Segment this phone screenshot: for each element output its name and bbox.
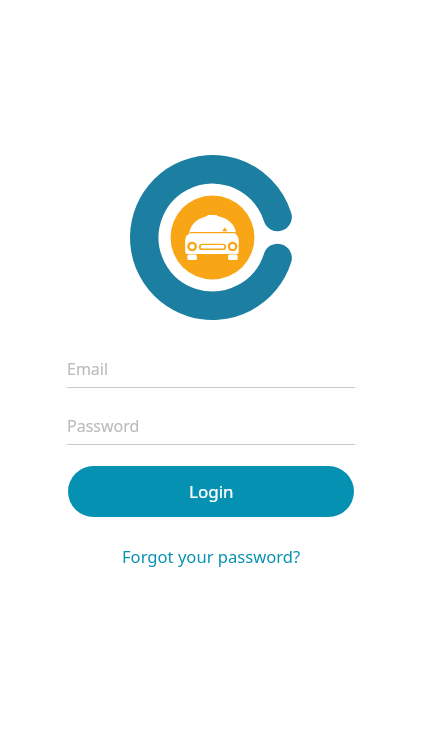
- other: Taxi app logo: [130, 155, 295, 320]
- button[interactable]: Password: [67, 415, 355, 445]
- staticText: Forgot your password?: [122, 545, 301, 568]
- button[interactable]: Forgot your password?: [96, 538, 326, 574]
- staticText: Login: [189, 480, 234, 503]
- button[interactable]: Login: [68, 466, 354, 517]
- staticText: Password: [67, 415, 140, 437]
- staticText: Email: [67, 358, 109, 380]
- button[interactable]: Email: [67, 358, 355, 388]
